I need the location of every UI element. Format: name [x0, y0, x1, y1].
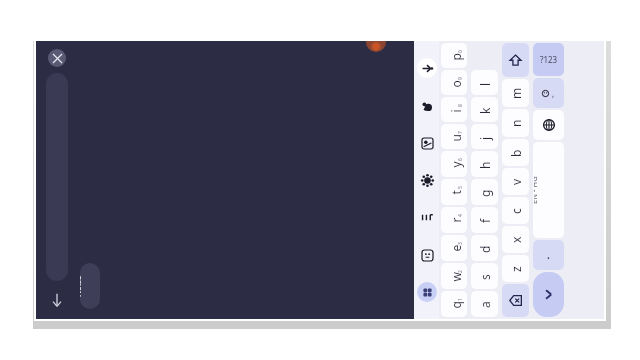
staticText: r: [447, 217, 463, 222]
staticText: 5: [457, 186, 464, 189]
button[interactable]: o: [441, 70, 467, 95]
staticText: l: [476, 81, 492, 85]
staticText: g: [476, 188, 492, 196]
button[interactable]: Space: [533, 142, 564, 238]
staticText: 4: [457, 214, 464, 217]
button[interactable]: x: [502, 226, 529, 253]
button[interactable]: e: [441, 235, 467, 261]
staticText: Extracts a mask from the layer based on …: [343, 45, 369, 192]
staticText: v: [507, 177, 523, 184]
button[interactable]: Emoji and comma: [533, 78, 564, 108]
button[interactable]: Stickers: [417, 96, 437, 116]
button[interactable]: Backspace: [502, 284, 529, 317]
button[interactable]: w: [441, 263, 467, 289]
button[interactable]: k: [471, 97, 498, 122]
button[interactable]: Emoji sticker: [417, 245, 437, 265]
staticText: 3: [457, 242, 464, 245]
staticText: ?123: [540, 54, 558, 65]
staticText: 8: [457, 104, 464, 107]
button[interactable]: g: [471, 179, 498, 205]
button[interactable]: v: [502, 168, 529, 195]
button[interactable]: n: [502, 109, 529, 137]
staticText: j: [476, 135, 492, 139]
staticText: 7: [457, 131, 464, 134]
staticText: q: [447, 300, 463, 308]
button[interactable]: Symbols: [533, 43, 564, 76]
button[interactable]: GIF: [417, 207, 437, 227]
staticText: k: [476, 106, 492, 113]
staticText: i: [447, 108, 463, 112]
button[interactable]: b: [502, 139, 529, 166]
button[interactable]: t: [441, 179, 467, 205]
button[interactable]: u: [441, 124, 467, 149]
staticText: d: [476, 244, 492, 252]
button[interactable]: Close: [48, 49, 66, 67]
staticText: u: [447, 133, 463, 141]
staticText: z: [507, 265, 523, 271]
button[interactable]: Shift: [502, 43, 529, 77]
button[interactable]: h: [471, 151, 498, 177]
staticText: c: [507, 207, 523, 213]
button[interactable]: y: [441, 151, 467, 177]
button[interactable]: m: [502, 79, 529, 107]
staticText: x: [507, 235, 523, 242]
button[interactable]: Enter: [533, 272, 564, 317]
button[interactable]: z: [502, 255, 529, 282]
button[interactable]: l: [471, 70, 498, 95]
staticText: 6: [457, 158, 464, 161]
staticText: s: [476, 273, 492, 279]
staticText: y: [447, 160, 463, 167]
staticText: ,: [552, 88, 555, 99]
button[interactable]: p: [441, 43, 467, 68]
staticText: .: [547, 248, 550, 262]
button[interactable]: j: [471, 124, 498, 149]
button[interactable]: a: [471, 291, 498, 317]
staticText: w: [447, 271, 463, 281]
button[interactable]: s: [471, 263, 498, 289]
staticText: f: [476, 217, 492, 222]
button[interactable]: Translate: [417, 133, 437, 153]
button[interactable]: i: [441, 97, 467, 122]
staticText: o: [447, 79, 463, 87]
button[interactable]: Apps: [417, 282, 437, 302]
button[interactable]: q: [441, 291, 467, 317]
staticText: b: [507, 148, 523, 156]
staticText: n: [507, 118, 523, 126]
button[interactable]: Settings: [417, 170, 437, 190]
button[interactable]: f: [471, 207, 498, 233]
button[interactable]: Change language: [533, 110, 564, 140]
button[interactable]: d: [471, 235, 498, 261]
staticText: Noise: [85, 263, 96, 284]
button[interactable]: Luma Stamper: [322, 45, 396, 315]
button[interactable]: Noise: [80, 263, 100, 309]
staticText: m: [507, 86, 523, 98]
button[interactable]: Period: [533, 240, 564, 270]
staticText: 1: [457, 298, 464, 301]
button[interactable]: c: [502, 197, 529, 224]
staticText: t: [447, 189, 463, 194]
button[interactable]: Expand toolbar: [417, 58, 437, 78]
button[interactable]: r: [441, 207, 467, 233]
button[interactable]: Back: [44, 287, 70, 313]
staticText: h: [476, 160, 492, 168]
staticText: e: [447, 244, 463, 251]
staticText: 9: [457, 77, 464, 80]
staticText: p: [447, 52, 463, 60]
staticText: 2: [457, 270, 464, 273]
staticText: a: [476, 300, 492, 307]
